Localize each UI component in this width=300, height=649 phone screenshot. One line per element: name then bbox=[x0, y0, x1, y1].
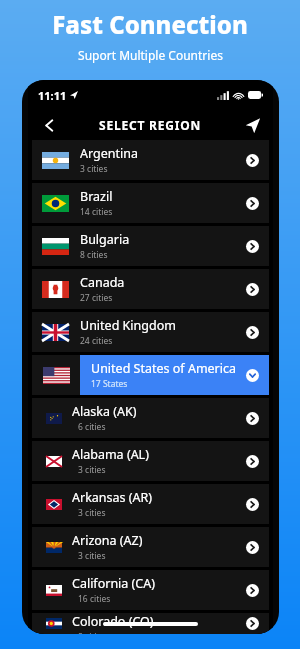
staticText: Arizona (AZ) bbox=[72, 532, 143, 549]
staticText: 3 cities bbox=[78, 550, 106, 562]
button[interactable]: United States of America bbox=[32, 355, 269, 395]
button[interactable]: California (CA) bbox=[32, 570, 269, 610]
staticText: 3 cities bbox=[78, 507, 106, 519]
button[interactable]: Argentina bbox=[32, 140, 269, 180]
staticText: California (CA) bbox=[72, 575, 155, 592]
staticText: United States of America bbox=[91, 360, 237, 377]
staticText: Alaska (AK) bbox=[72, 403, 137, 420]
staticText: 11:11 bbox=[38, 88, 67, 103]
button[interactable]: Arkansas (AR) bbox=[32, 484, 269, 524]
staticText: Alabama (AL) bbox=[72, 446, 149, 463]
staticText: Arkansas (AR) bbox=[72, 489, 153, 506]
staticText: 3 cities bbox=[80, 163, 108, 175]
staticText: 6 cities bbox=[78, 421, 106, 433]
staticText: Suport Multiple Countries bbox=[78, 47, 223, 63]
staticText: 14 cities bbox=[80, 206, 113, 218]
button[interactable]: Back bbox=[36, 112, 62, 138]
staticText: SELECT REGION bbox=[99, 117, 202, 133]
staticText: Argentina bbox=[80, 145, 138, 162]
button[interactable]: Colorado (CO) bbox=[32, 613, 269, 634]
staticText: 3 cities bbox=[78, 464, 106, 476]
staticText: 27 cities bbox=[80, 292, 113, 304]
staticText: Bulgaria bbox=[80, 231, 130, 248]
staticText: Canada bbox=[80, 274, 125, 291]
button[interactable]: Canada bbox=[32, 269, 269, 309]
button[interactable]: Arizona (AZ) bbox=[32, 527, 269, 567]
button[interactable]: Alabama (AL) bbox=[32, 441, 269, 481]
staticText: 24 cities bbox=[80, 335, 113, 347]
staticText: 16 cities bbox=[78, 593, 111, 605]
staticText: 17 States bbox=[91, 378, 128, 390]
button[interactable]: Alaska (AK) bbox=[32, 398, 269, 438]
staticText: 8 cities bbox=[80, 249, 108, 261]
button[interactable]: Locate bbox=[239, 112, 265, 138]
staticText: 8 cities bbox=[78, 631, 106, 634]
staticText: Fast Connection bbox=[52, 8, 248, 41]
staticText: Brazil bbox=[80, 188, 113, 205]
button[interactable]: Brazil bbox=[32, 183, 269, 223]
staticText: Colorado (CO) bbox=[72, 613, 154, 630]
button[interactable]: Bulgaria bbox=[32, 226, 269, 266]
staticText: United Kingdom bbox=[80, 317, 176, 334]
button[interactable]: United Kingdom bbox=[32, 312, 269, 352]
